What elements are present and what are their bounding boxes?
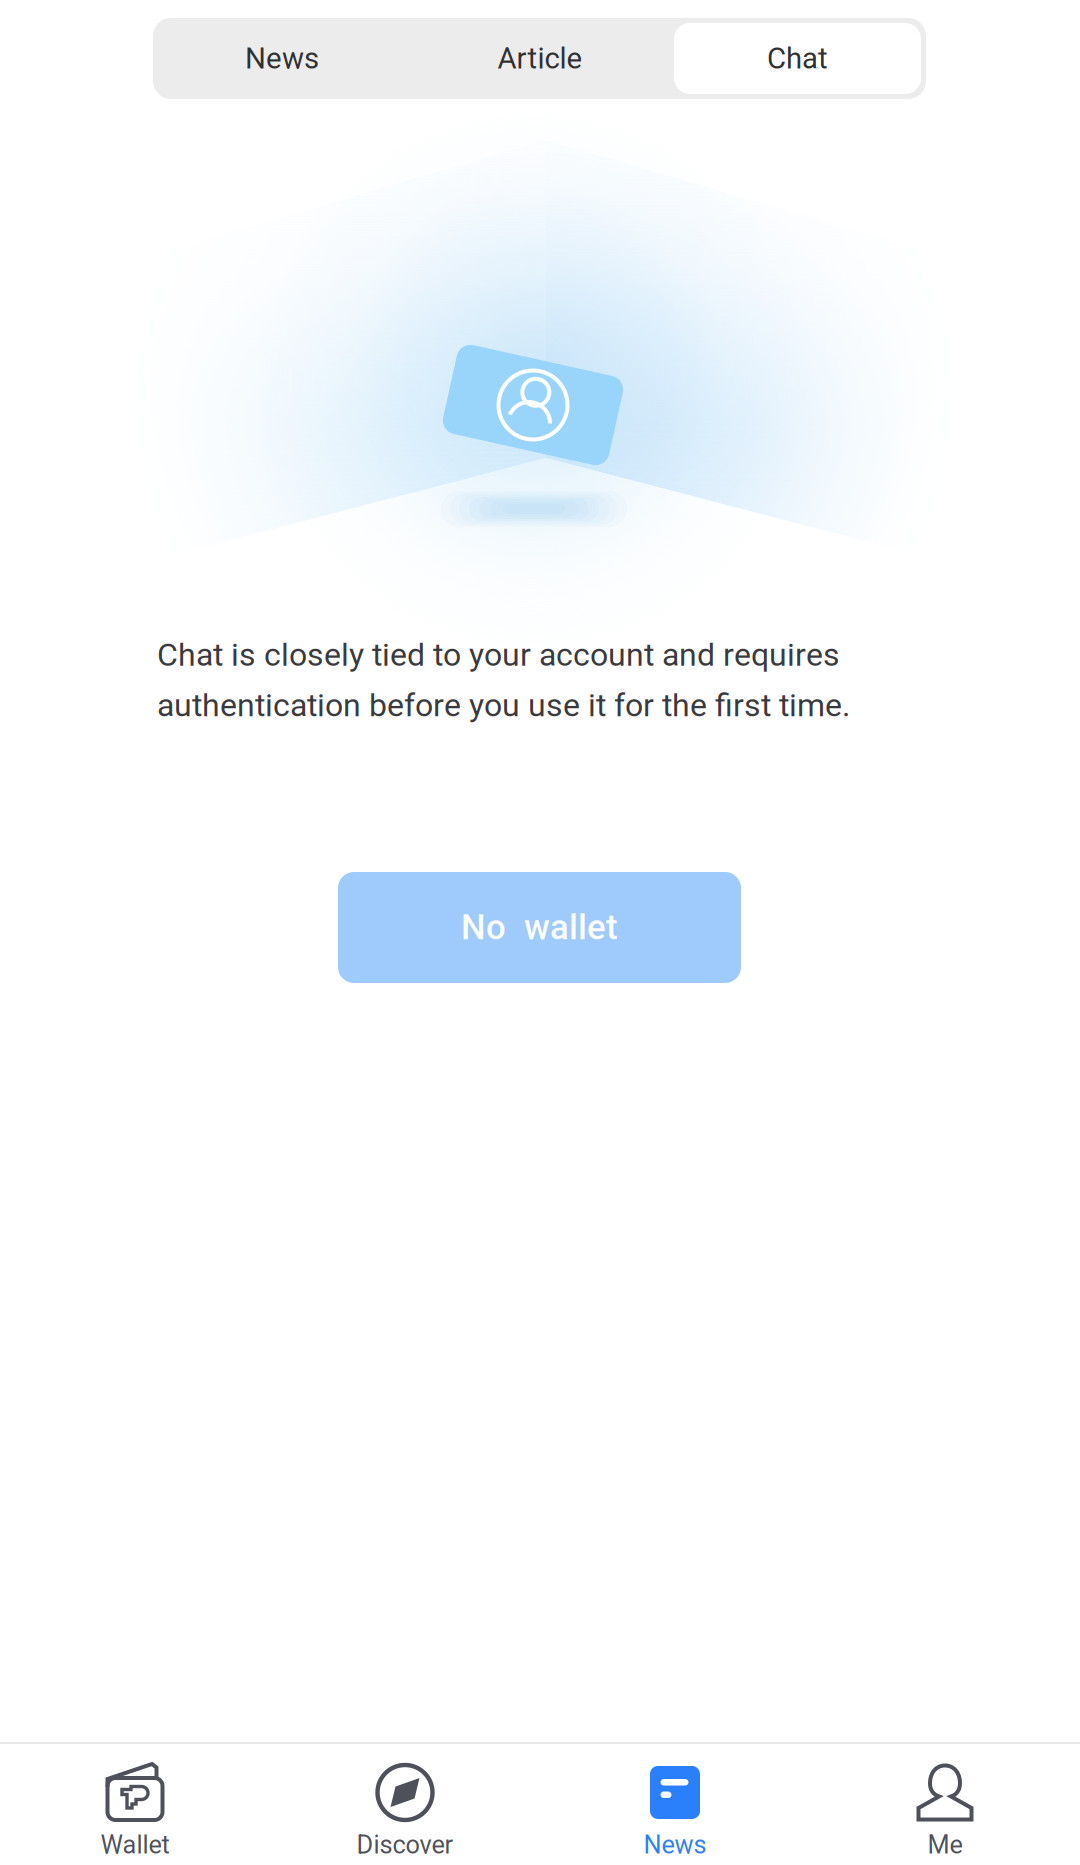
staticText: Chat [767, 41, 828, 76]
staticText: Wallet [100, 1830, 169, 1860]
staticText: News [643, 1830, 706, 1860]
button[interactable]: Chat [669, 18, 926, 99]
staticText: News [245, 41, 319, 76]
button[interactable]: Article [411, 18, 669, 99]
button[interactable]: News [540, 1744, 810, 1865]
button[interactable]: Me [810, 1744, 1080, 1865]
staticText: No wallet [461, 907, 618, 948]
button[interactable]: Discover [270, 1744, 540, 1865]
button[interactable]: Wallet [0, 1744, 270, 1865]
button[interactable]: No wallet [338, 872, 741, 983]
staticText: Discover [356, 1830, 453, 1860]
staticText: Me [927, 1830, 962, 1860]
button[interactable]: News [153, 18, 411, 99]
staticText: Article [497, 41, 582, 76]
staticText: Chat is closely tied to your account and… [157, 636, 850, 724]
